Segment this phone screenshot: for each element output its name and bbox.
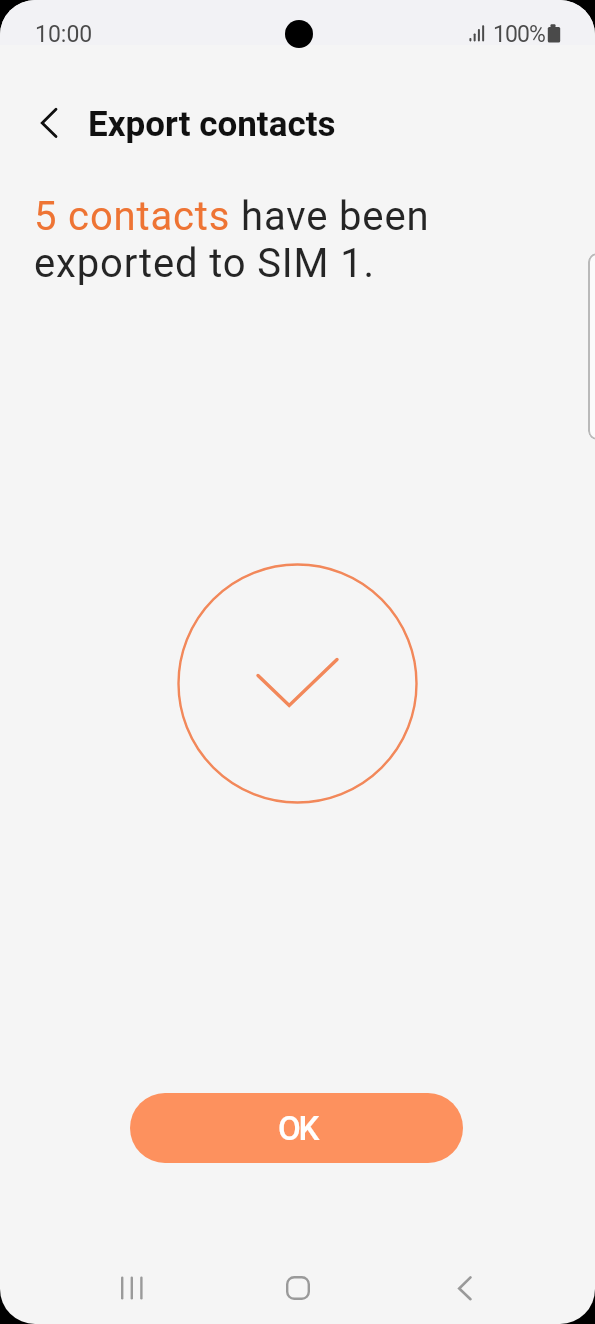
- button[interactable]: OK: [130, 1093, 463, 1163]
- button[interactable]: Back: [441, 1264, 489, 1312]
- staticText: Export contacts: [88, 104, 336, 145]
- staticText: 100%: [493, 21, 546, 48]
- staticText: 10:00: [35, 21, 93, 48]
- staticText: 5 contacts have been exported to SIM 1.: [34, 193, 474, 287]
- button[interactable]: Recent apps: [107, 1264, 155, 1312]
- button[interactable]: Home: [274, 1264, 322, 1312]
- staticText: OK: [278, 1109, 318, 1148]
- button[interactable]: Navigate up: [28, 101, 72, 145]
